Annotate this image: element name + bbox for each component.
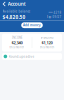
staticText: •••• 4218 bbox=[48, 11, 61, 15]
staticText: SPENDING bbox=[41, 36, 54, 40]
staticText: Round-ups active bbox=[9, 54, 35, 59]
staticText: Account bbox=[8, 1, 26, 7]
button[interactable]: Round-ups active bbox=[2, 53, 62, 60]
button[interactable]: Back bbox=[2, 1, 6, 7]
staticText: $1,120 bbox=[42, 40, 53, 45]
staticText: $4,820.50 bbox=[2, 14, 25, 20]
staticText: Exp 09/27 bbox=[46, 15, 61, 19]
staticText: Add money bbox=[23, 23, 41, 27]
staticText: this month bbox=[40, 46, 55, 49]
staticText: INCOME bbox=[12, 36, 22, 40]
staticText: this month bbox=[9, 46, 24, 49]
button[interactable]: Add money bbox=[21, 22, 43, 28]
staticText: $2,340 bbox=[11, 40, 22, 45]
staticText: Available balance bbox=[2, 9, 30, 13]
